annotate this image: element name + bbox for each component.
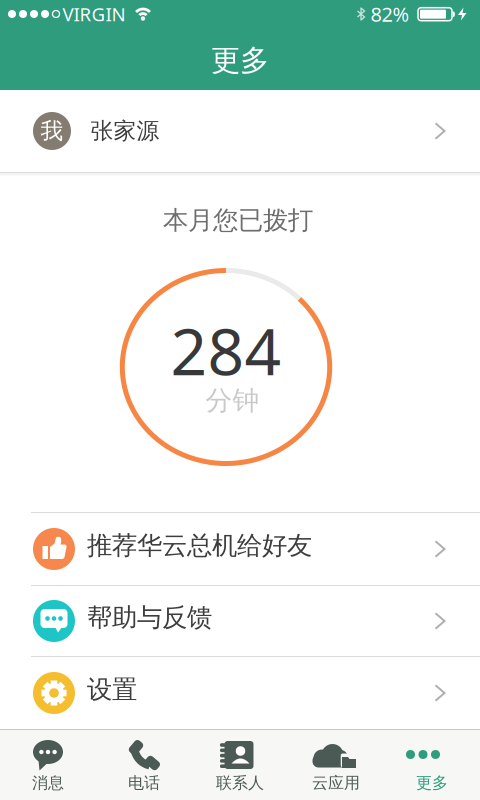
staticText: 张家源	[90, 117, 159, 145]
button[interactable]: 推荐华云总机给好友	[0, 513, 480, 585]
staticText: 联系人	[216, 773, 264, 793]
staticText: VIRGIN	[62, 2, 125, 26]
staticText: 设置	[87, 674, 137, 705]
button[interactable]: 帮助与反馈	[0, 586, 480, 656]
staticText: 284	[170, 308, 281, 393]
button[interactable]: 我	[0, 90, 480, 172]
staticText: 更多	[416, 773, 448, 793]
button[interactable]: 消息	[0, 730, 96, 800]
button[interactable]: 联系人	[192, 730, 288, 800]
staticText: 我	[40, 117, 63, 145]
button[interactable]: 云应用	[288, 730, 384, 800]
staticText: 推荐华云总机给好友	[87, 530, 312, 561]
staticText: 帮助与反馈	[87, 602, 212, 633]
staticText: 分钟	[205, 384, 259, 417]
staticText: 消息	[32, 773, 64, 793]
button[interactable]: 电话	[96, 730, 192, 800]
button[interactable]: 更多	[384, 730, 480, 800]
button[interactable]: 设置	[0, 657, 480, 729]
staticText: 电话	[128, 773, 160, 793]
staticText: 云应用	[312, 773, 360, 793]
staticText: 本月您已拨打	[163, 205, 313, 236]
staticText: 更多	[211, 42, 269, 78]
staticText: 82%	[370, 1, 409, 27]
